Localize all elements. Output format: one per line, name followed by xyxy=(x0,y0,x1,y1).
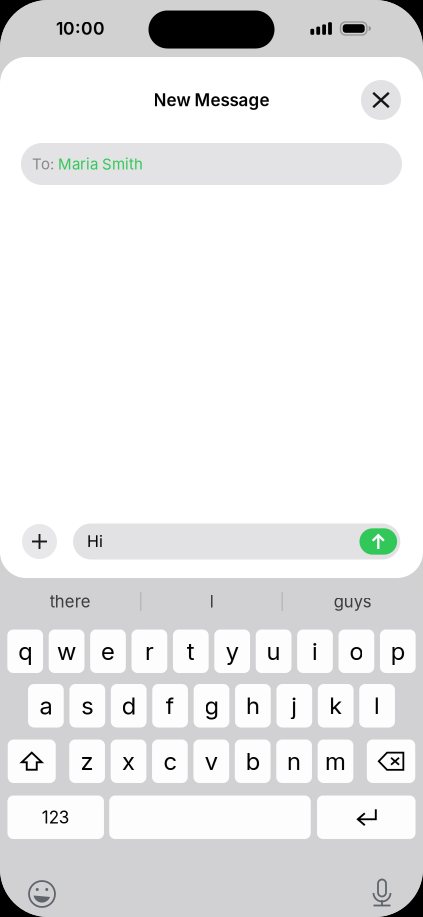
staticText: f xyxy=(166,691,175,720)
staticText: there xyxy=(50,591,91,612)
staticText: g xyxy=(204,691,218,720)
staticText: r xyxy=(145,637,154,666)
staticText: New Message xyxy=(153,90,269,110)
staticText: w xyxy=(57,637,76,666)
button[interactable]: p xyxy=(380,629,416,673)
button[interactable]: Close xyxy=(359,78,403,122)
button[interactable]: q xyxy=(7,629,43,673)
staticText: n xyxy=(287,747,301,776)
staticText: v xyxy=(205,747,218,776)
button[interactable]: e xyxy=(90,629,126,673)
staticText: y xyxy=(226,637,239,666)
button[interactable]: Send xyxy=(358,523,399,559)
button[interactable]: d xyxy=(111,684,147,727)
button[interactable]: t xyxy=(173,629,209,673)
staticText: p xyxy=(391,637,405,666)
button[interactable]: Emoji xyxy=(20,872,64,916)
button[interactable]: n xyxy=(276,739,312,783)
button[interactable]: g xyxy=(194,684,229,727)
button[interactable]: x xyxy=(111,739,146,783)
staticText: b xyxy=(246,747,260,776)
staticText: o xyxy=(349,637,363,666)
button[interactable]: m xyxy=(318,739,353,783)
staticText: q xyxy=(18,637,32,666)
staticText: s xyxy=(81,691,93,720)
staticText: guys xyxy=(334,591,372,612)
staticText: z xyxy=(81,747,94,776)
button[interactable]: s xyxy=(69,684,105,727)
staticText: m xyxy=(325,747,346,776)
staticText: 123 xyxy=(42,807,70,828)
staticText: a xyxy=(39,691,52,720)
staticText: Maria Smith xyxy=(58,155,143,173)
staticText: h xyxy=(246,691,260,720)
staticText: u xyxy=(267,637,281,666)
staticText: d xyxy=(122,691,136,720)
button[interactable]: v xyxy=(193,739,229,783)
button[interactable]: I xyxy=(141,578,282,625)
staticText: i xyxy=(312,637,318,666)
staticText: l xyxy=(374,691,380,720)
button[interactable]: Add media xyxy=(21,523,58,560)
button[interactable]: there xyxy=(0,578,140,625)
button[interactable]: Dictate xyxy=(360,872,404,916)
button[interactable]: z xyxy=(69,739,105,783)
button[interactable]: w xyxy=(49,629,84,673)
staticText: k xyxy=(329,691,342,720)
staticText: t xyxy=(187,637,195,666)
button[interactable]: k xyxy=(318,684,354,727)
button[interactable]: guys xyxy=(283,578,423,625)
button[interactable]: 123 xyxy=(7,795,104,839)
button[interactable]: l xyxy=(359,684,395,727)
button[interactable]: Shift xyxy=(8,739,56,783)
button[interactable]: a xyxy=(28,684,64,727)
button[interactable]: j xyxy=(276,684,312,727)
button[interactable]: y xyxy=(214,629,250,673)
button[interactable]: Delete xyxy=(367,739,415,783)
button[interactable]: r xyxy=(132,629,167,673)
button[interactable]: i xyxy=(297,629,333,673)
staticText: e xyxy=(101,637,115,666)
button[interactable]: Return xyxy=(317,795,416,839)
button[interactable]: u xyxy=(256,629,291,673)
staticText: Hi xyxy=(87,532,103,551)
staticText: j xyxy=(291,691,297,720)
button[interactable]: c xyxy=(152,739,188,783)
button[interactable]: h xyxy=(235,684,271,727)
button[interactable]: o xyxy=(339,629,374,673)
staticText: 10:00 xyxy=(56,18,105,39)
staticText: I xyxy=(209,591,213,612)
staticText: c xyxy=(163,747,176,776)
button[interactable]: f xyxy=(152,684,188,727)
staticText: To: xyxy=(32,155,58,173)
staticText: x xyxy=(122,747,135,776)
button[interactable]: b xyxy=(235,739,271,783)
